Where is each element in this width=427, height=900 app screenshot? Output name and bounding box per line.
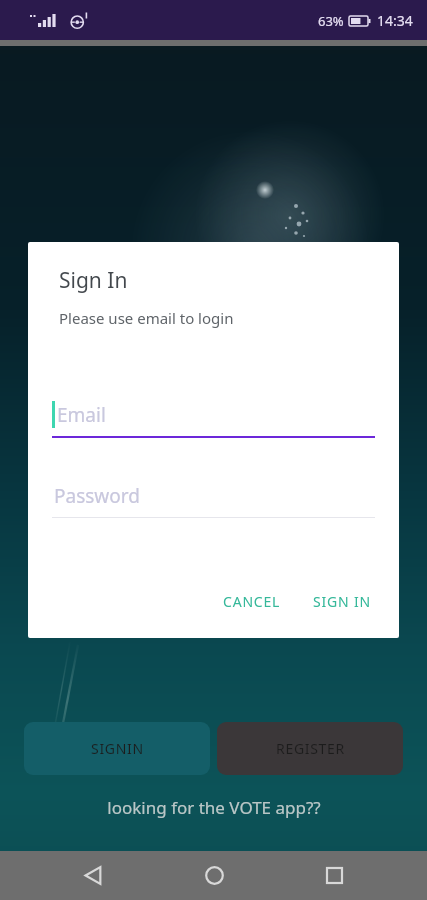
button[interactable]: REGISTER (217, 722, 403, 775)
button[interactable]: Recent apps (306, 851, 362, 900)
staticText: looking for the VOTE app?? (107, 796, 321, 819)
staticText: 14:34 (377, 11, 413, 30)
staticText: Email (57, 402, 106, 428)
button[interactable]: SIGN IN (303, 583, 381, 620)
staticText: Please use email to login (59, 308, 234, 328)
button[interactable]: Home (186, 851, 242, 900)
button[interactable]: CANCEL (213, 583, 291, 620)
staticText: SIGN IN (313, 592, 371, 611)
button[interactable]: Email (52, 390, 375, 438)
button[interactable]: Back (65, 851, 121, 900)
button[interactable]: SIGNIN (24, 722, 210, 775)
button[interactable]: Password (52, 474, 375, 518)
button[interactable]: looking for the VOTE app?? (0, 796, 427, 819)
staticText: Sign In (59, 266, 128, 295)
staticText: 63% (318, 12, 344, 30)
staticText: SIGNIN (91, 739, 144, 758)
staticText: CANCEL (223, 592, 281, 611)
staticText: Password (54, 483, 140, 509)
staticText: REGISTER (276, 739, 345, 758)
